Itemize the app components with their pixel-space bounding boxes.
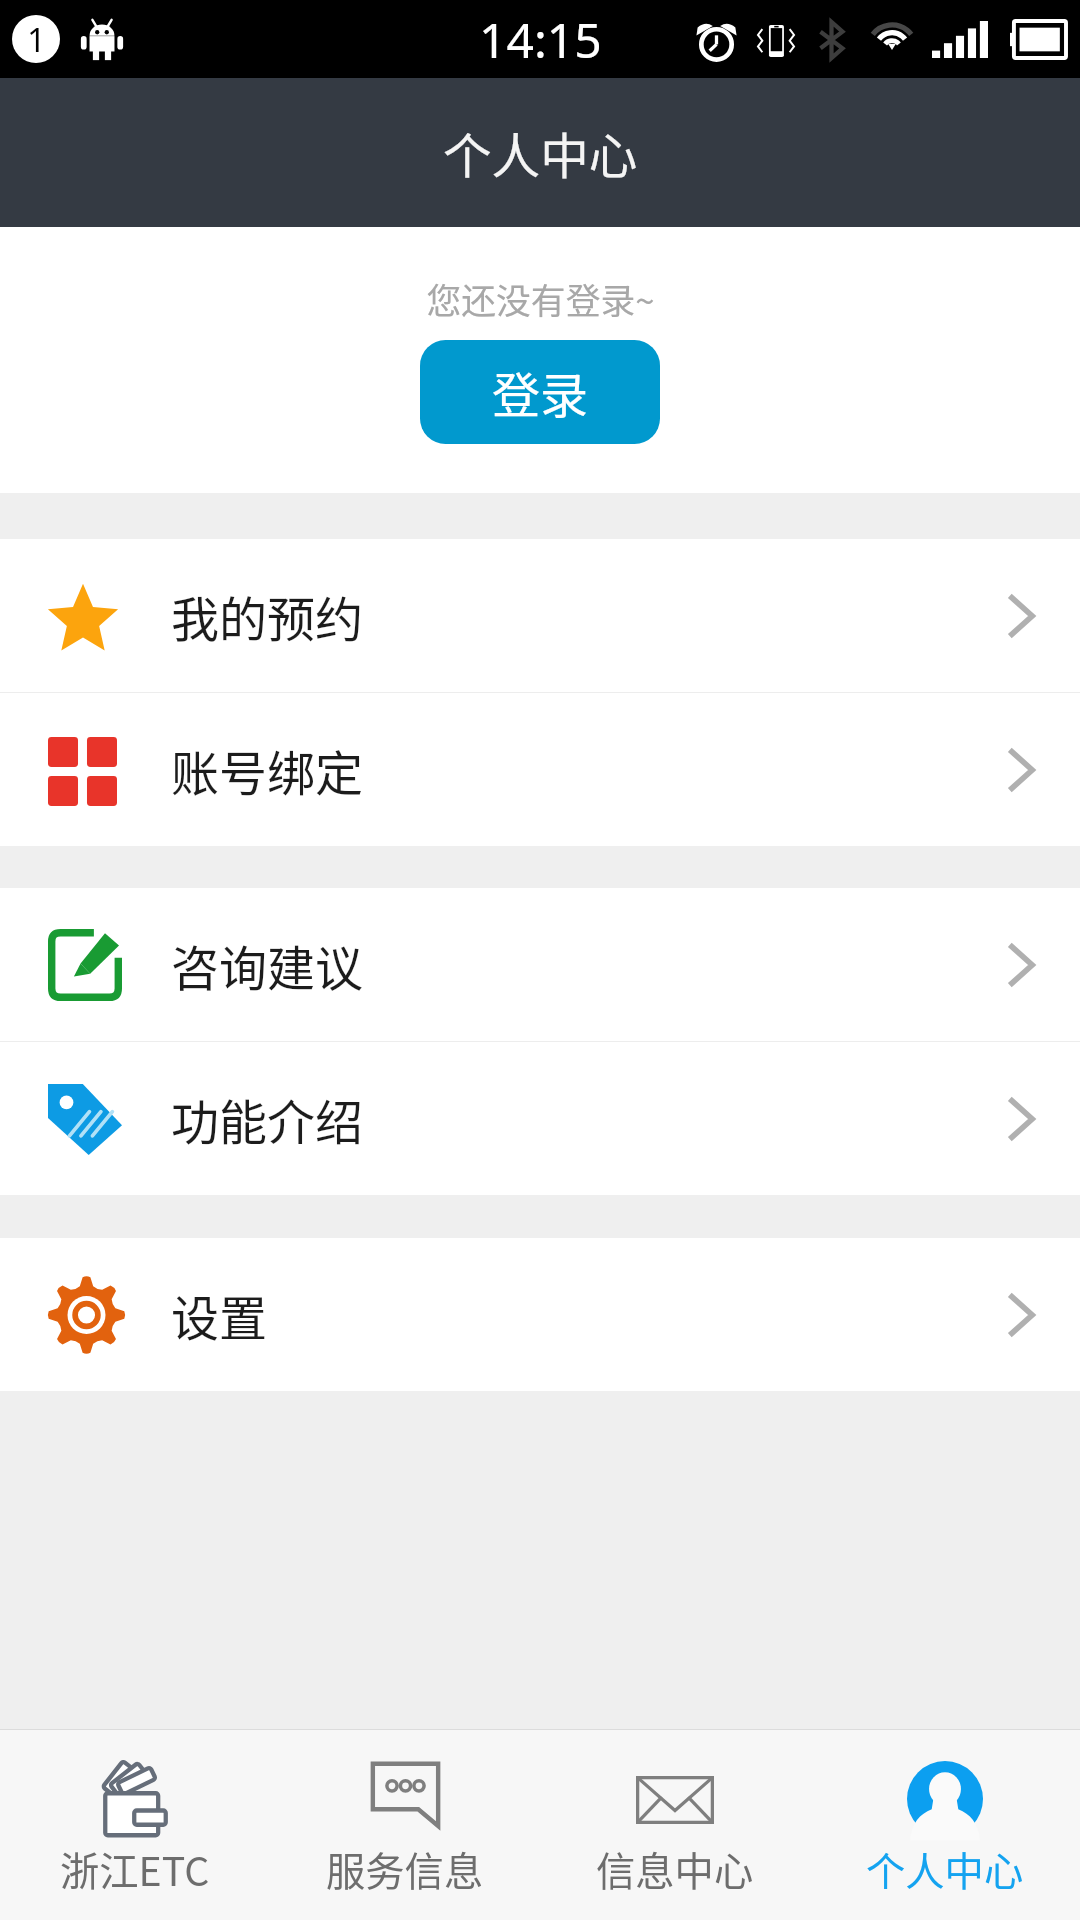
button[interactable]: 服务信息 [270,1730,540,1920]
staticText: 咨询建议 [171,930,364,1000]
staticText: 我的预约 [171,581,364,651]
staticText: 1 [27,17,46,62]
staticText: 功能介绍 [171,1084,364,1154]
staticText: 服务信息 [326,1840,484,1897]
button[interactable]: 个人中心 [810,1730,1080,1920]
staticText: 个人中心 [866,1840,1024,1897]
staticText: 设置 [171,1280,268,1350]
button[interactable]: 浙江ETC [0,1730,270,1920]
button[interactable]: 我的预约 [0,539,1080,692]
button[interactable]: 登录 [420,340,660,444]
button[interactable]: 咨询建议 [0,888,1080,1041]
staticText: 账号绑定 [171,735,364,805]
staticText: 14:15 [479,7,602,72]
button[interactable]: 信息中心 [540,1730,810,1920]
staticText: 信息中心 [596,1840,754,1897]
button[interactable]: 账号绑定 [0,693,1080,846]
staticText: 登录 [492,357,589,427]
button[interactable]: 设置 [0,1238,1080,1391]
staticText: 个人中心 [443,118,638,188]
staticText: 您还没有登录~ [426,274,655,324]
button[interactable]: 功能介绍 [0,1042,1080,1195]
staticText: 浙江ETC [60,1840,210,1897]
